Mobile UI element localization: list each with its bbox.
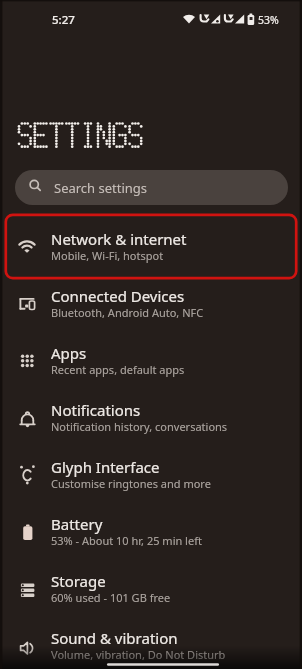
- staticText: Glyph Interface: [51, 457, 160, 477]
- button[interactable]: Glyph Interface: [0, 446, 302, 503]
- staticText: Battery: [51, 514, 103, 534]
- button[interactable]: [15, 170, 288, 205]
- button[interactable]: Network & internet: [0, 218, 302, 275]
- staticText: Volume, vibration, Do Not Disturb: [51, 647, 226, 662]
- staticText: Search settings: [54, 179, 148, 197]
- staticText: Connected Devices: [51, 286, 185, 306]
- staticText: Network & internet: [51, 229, 187, 249]
- button[interactable]: Apps: [0, 332, 302, 389]
- staticText: Bluetooth, Android Auto, NFC: [51, 305, 204, 320]
- staticText: Apps: [51, 343, 87, 363]
- staticText: Storage: [51, 571, 106, 591]
- staticText: Notification history, conversations: [51, 419, 228, 434]
- staticText: Customise ringtones and more: [51, 476, 211, 491]
- staticText: Mobile, Wi-Fi, hotspot: [51, 248, 164, 263]
- staticText: Recent apps, default apps: [51, 362, 185, 377]
- staticText: 53% - About 10 hr, 25 min left: [51, 533, 202, 548]
- button[interactable]: Connected Devices: [0, 275, 302, 332]
- button[interactable]: Battery: [0, 503, 302, 560]
- staticText: Notifications: [51, 400, 141, 420]
- button[interactable]: Sound & vibration: [0, 617, 302, 669]
- staticText: Sound & vibration: [51, 628, 178, 648]
- button[interactable]: Storage: [0, 560, 302, 617]
- staticText: 5:27: [52, 12, 75, 28]
- staticText: 60% used - 101 GB free: [51, 590, 171, 605]
- staticText: 53%: [258, 13, 279, 27]
- button[interactable]: Notifications: [0, 389, 302, 446]
